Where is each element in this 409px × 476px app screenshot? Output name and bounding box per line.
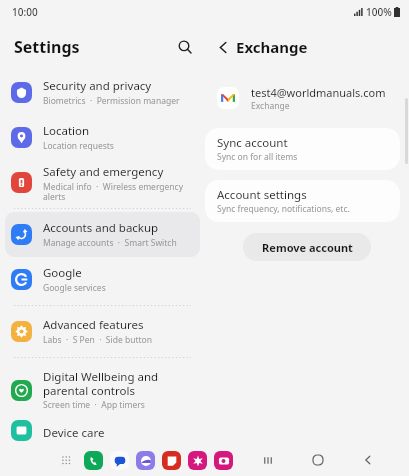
button[interactable]: Sync account bbox=[205, 128, 400, 170]
staticText: Remove account bbox=[262, 240, 353, 255]
button[interactable]: Account settings bbox=[205, 180, 400, 222]
button[interactable]: Safety and emergency bbox=[5, 160, 200, 205]
button[interactable]: Advanced features bbox=[5, 309, 200, 354]
staticText: Settings bbox=[14, 36, 80, 58]
button[interactable]: Digital Wellbeing and parental controls bbox=[5, 361, 200, 419]
staticText: Sync frequency, notifications, etc. bbox=[217, 203, 350, 215]
button[interactable]: Messages bbox=[110, 451, 129, 470]
staticText: Digital Wellbeing and parental controls bbox=[43, 369, 194, 398]
staticText: Account settings bbox=[217, 187, 307, 203]
staticText: Google bbox=[43, 265, 82, 281]
staticText: Exchange bbox=[236, 37, 308, 57]
button[interactable]: Back bbox=[210, 34, 236, 60]
button[interactable]: Recents bbox=[257, 449, 279, 471]
staticText: Medical info · Wireless emergency alerts bbox=[43, 181, 194, 202]
staticText: Exchange bbox=[251, 100, 290, 112]
staticText: Accounts and backup bbox=[43, 220, 159, 236]
button[interactable]: Phone bbox=[84, 451, 103, 470]
button[interactable]: Notes bbox=[162, 451, 181, 470]
staticText: Advanced features bbox=[43, 317, 144, 333]
button[interactable]: Home bbox=[307, 449, 329, 471]
staticText: Location requests bbox=[43, 140, 114, 152]
staticText: Location bbox=[43, 123, 90, 139]
staticText: Sync on for all items bbox=[217, 151, 298, 163]
button[interactable]: Location bbox=[5, 115, 200, 160]
button[interactable]: Google bbox=[5, 257, 200, 302]
button[interactable]: Search bbox=[172, 34, 198, 60]
staticText: 10:00 bbox=[12, 5, 38, 19]
button[interactable]: Security and privacy bbox=[5, 70, 200, 115]
staticText: Security and privacy bbox=[43, 78, 152, 94]
button[interactable]: All apps bbox=[58, 452, 76, 470]
staticText: test4@worldmanuals.com bbox=[251, 85, 386, 100]
staticText: Google services bbox=[43, 282, 106, 294]
button[interactable]: Gallery bbox=[188, 451, 207, 470]
button[interactable]: Device care bbox=[5, 419, 200, 441]
button[interactable]: Accounts and backup bbox=[5, 212, 200, 257]
staticText: Screen time · App timers bbox=[43, 399, 145, 411]
button[interactable]: Camera bbox=[214, 451, 233, 470]
button[interactable]: Remove account bbox=[243, 233, 371, 261]
staticText: Sync account bbox=[217, 135, 288, 151]
staticText: Manage accounts · Smart Switch bbox=[43, 237, 177, 249]
staticText: Safety and emergency bbox=[43, 164, 164, 180]
button[interactable]: Internet bbox=[136, 451, 155, 470]
staticText: Biometrics · Permission manager bbox=[43, 95, 180, 107]
button[interactable]: Back bbox=[357, 449, 379, 471]
button[interactable]: test4@worldmanuals.com bbox=[205, 76, 409, 120]
staticText: Device care bbox=[43, 425, 105, 441]
staticText: Labs · S Pen · Side button bbox=[43, 334, 152, 346]
staticText: 100% bbox=[366, 5, 392, 19]
